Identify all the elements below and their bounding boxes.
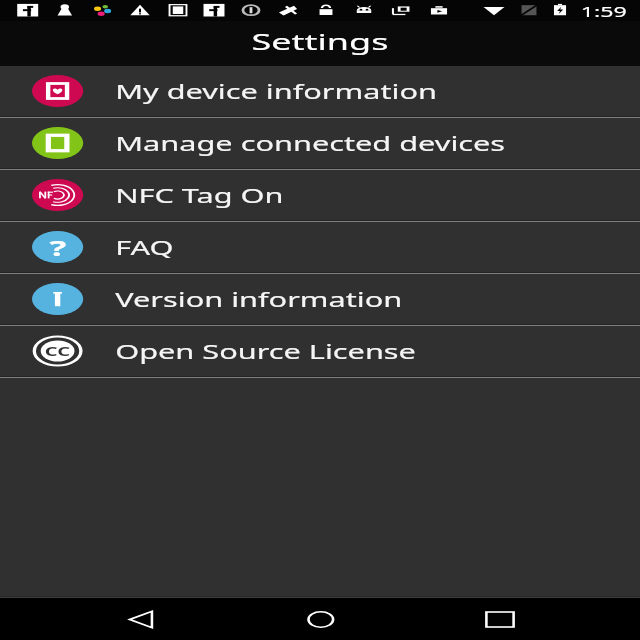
staticText: Version information [115,286,403,312]
staticText: FAQ [115,234,174,260]
staticText: 1:59 [581,1,627,21]
button[interactable]: ? [0,222,640,272]
staticText: ? [50,232,67,262]
button[interactable]: Back [93,598,189,640]
staticText: CC [45,343,70,360]
staticText: Manage connected devices [115,130,506,156]
button[interactable]: Version information [0,274,640,324]
staticText: Open Source License [115,338,416,364]
button[interactable]: Recents [451,598,547,640]
button[interactable]: Home [272,598,368,640]
button[interactable]: Manage connected devices [0,118,640,168]
staticText: NFC Tag On [115,182,285,208]
staticText: Settings [251,26,389,57]
button[interactable]: My device information [0,66,640,116]
button[interactable]: NFC Tag On [0,170,640,220]
button[interactable]: CC [0,326,640,376]
staticText: My device information [115,78,438,104]
